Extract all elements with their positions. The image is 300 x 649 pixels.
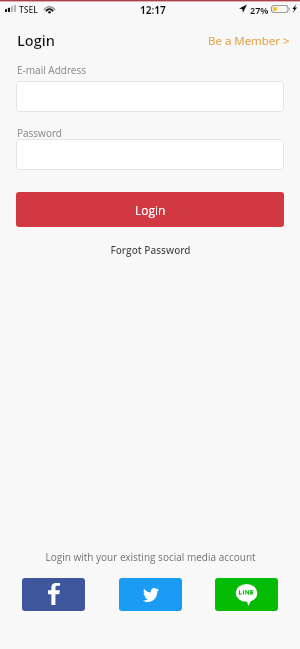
staticText: 27% [250, 4, 269, 16]
staticText: Forgot Password [110, 243, 191, 257]
button[interactable]: Twitter [119, 578, 182, 611]
button[interactable] [16, 81, 284, 112]
staticText: 12:17 [140, 3, 166, 17]
button[interactable]: Forgot Password [0, 243, 300, 257]
button[interactable]: LINE [215, 578, 278, 611]
staticText: Be a Member > [208, 33, 290, 49]
button[interactable]: Be a Member > [208, 33, 290, 49]
button[interactable]: Login [16, 192, 284, 227]
staticText: E-mail Address [17, 63, 86, 77]
button[interactable] [16, 139, 284, 170]
staticText: Login [17, 31, 56, 51]
staticText: TSEL [19, 4, 38, 16]
button[interactable]: Facebook [22, 578, 85, 611]
staticText: Login [135, 202, 166, 218]
staticText: Password [17, 126, 62, 140]
staticText: Login with your existing social media ac… [45, 550, 256, 564]
button[interactable]: Login [17, 31, 56, 51]
